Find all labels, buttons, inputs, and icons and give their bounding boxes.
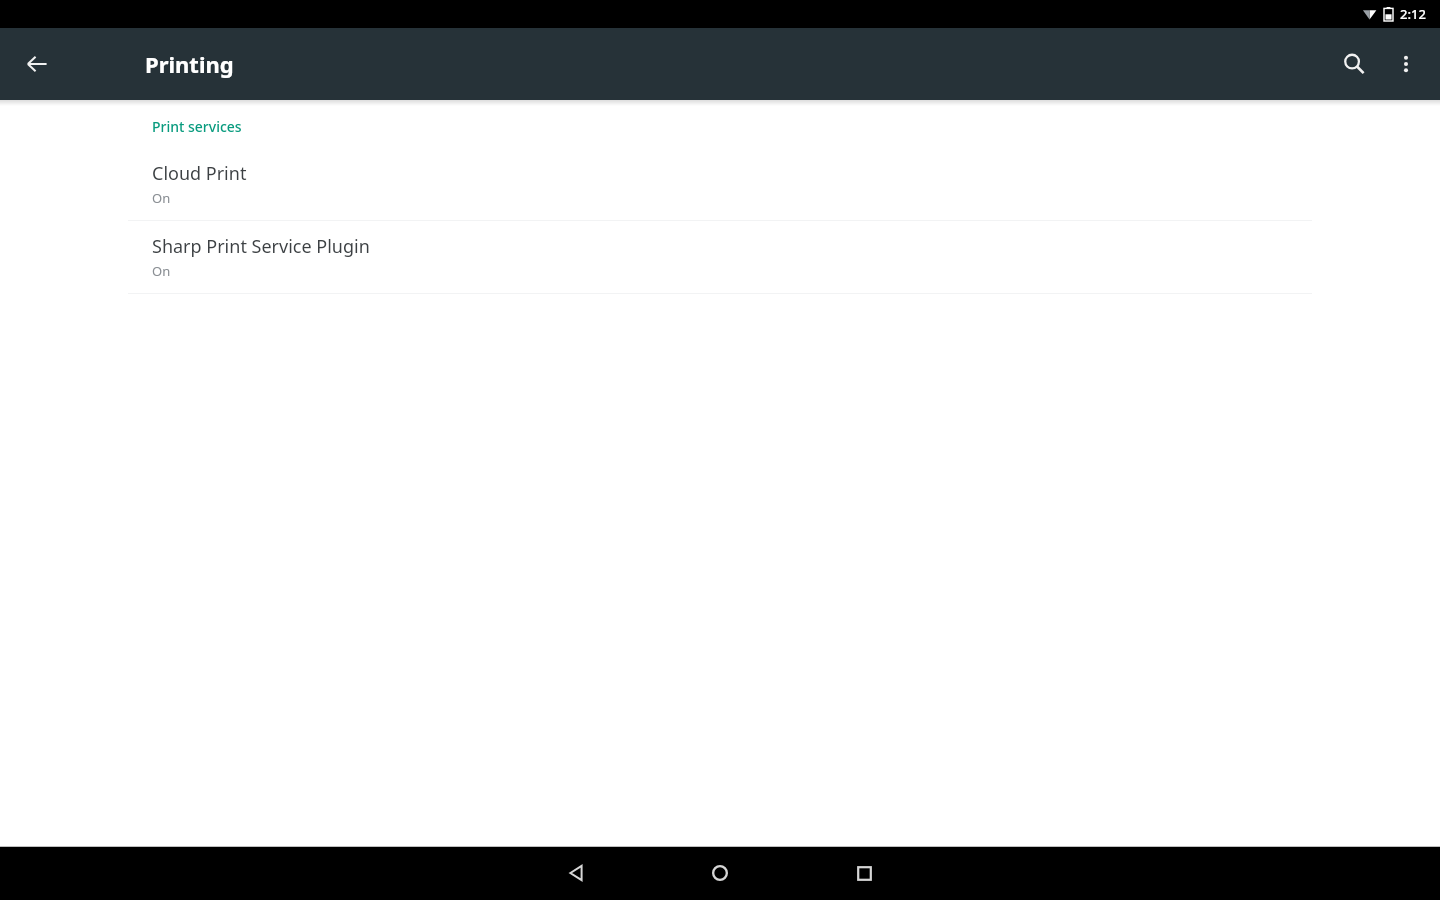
staticText: Sharp Print Service Plugin — [152, 234, 370, 259]
staticText: On — [152, 262, 171, 280]
button[interactable]: Recent apps — [836, 846, 892, 900]
staticText: 2:12 — [1400, 5, 1426, 23]
button[interactable]: Sharp Print Service Plugin — [0, 221, 1440, 293]
button[interactable]: More options — [1382, 40, 1430, 88]
staticText: Printing — [145, 49, 234, 79]
staticText: Cloud Print — [152, 161, 247, 186]
button[interactable]: Back — [9, 36, 65, 92]
staticText: Print services — [152, 117, 242, 136]
button[interactable]: Search — [1326, 36, 1382, 92]
staticText: On — [152, 189, 171, 207]
button[interactable]: Home — [692, 846, 748, 900]
button[interactable]: Cloud Print — [0, 148, 1440, 220]
button[interactable]: Back — [548, 846, 604, 900]
